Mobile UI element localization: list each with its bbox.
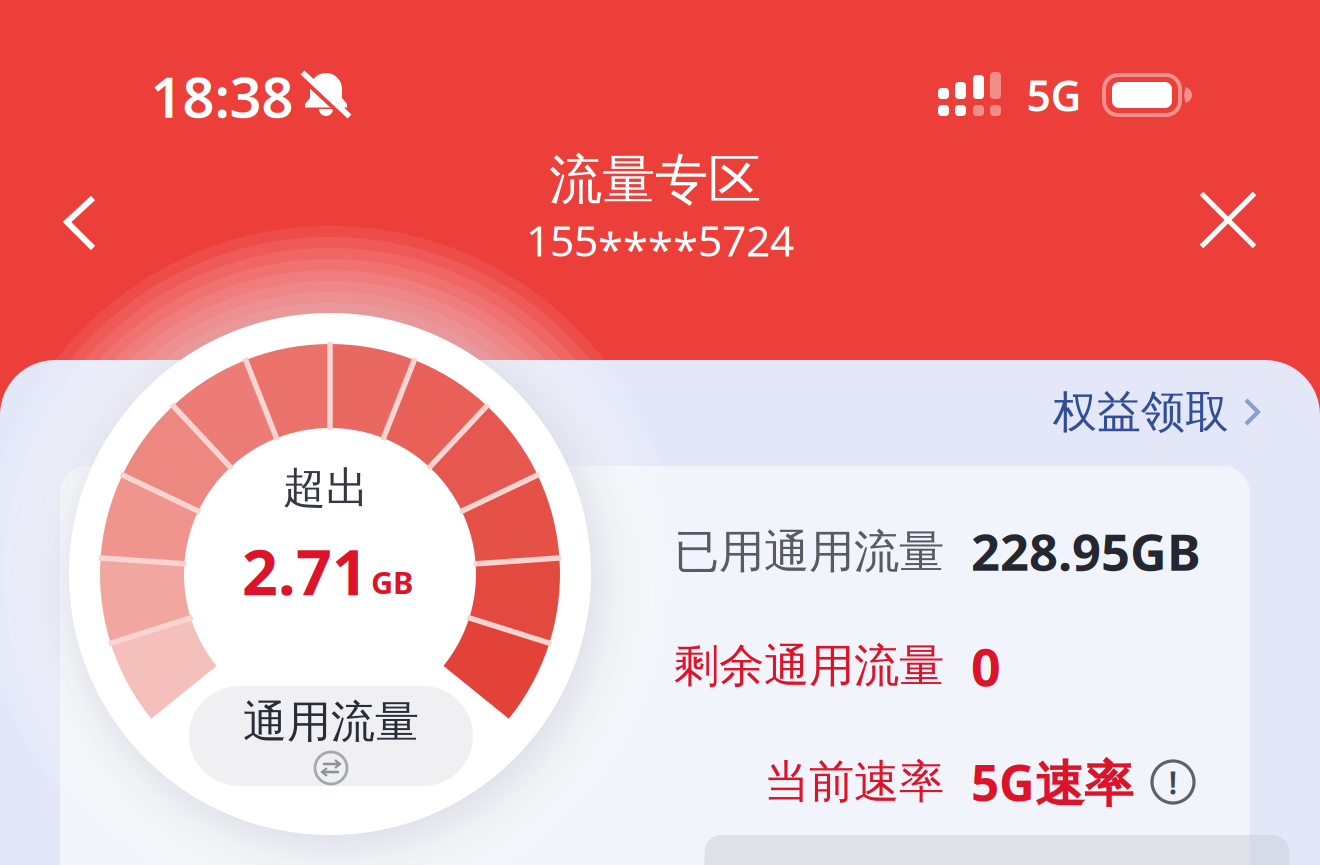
staticText: 流量专区 [549, 147, 761, 213]
staticText: 5724 [698, 212, 794, 268]
staticText: 18:38 [150, 59, 293, 133]
staticText: 剩余通用流量 [674, 638, 944, 694]
staticText: **** [598, 219, 698, 279]
staticText: 权益领取 [1053, 385, 1229, 439]
staticText: 155 [526, 212, 598, 268]
staticText: 当前速率 [764, 754, 944, 810]
staticText: GB [371, 562, 413, 602]
staticText: 2.71 [242, 529, 368, 613]
staticText: 5G [1026, 67, 1081, 123]
button[interactable]: 权益领取 [1053, 385, 1259, 439]
staticText: 超出 [283, 462, 369, 514]
button[interactable] [1201, 193, 1254, 246]
button[interactable] [64, 196, 98, 252]
staticText: 0 [971, 631, 1001, 701]
staticText: 已用通用流量 [674, 524, 944, 580]
button[interactable]: 通用流量 [189, 686, 473, 786]
staticText: 228.95GB [971, 517, 1201, 585]
staticText: 通用流量 [243, 695, 419, 749]
staticText: 5G速率 [971, 749, 1133, 815]
staticText: ! [1168, 761, 1177, 803]
